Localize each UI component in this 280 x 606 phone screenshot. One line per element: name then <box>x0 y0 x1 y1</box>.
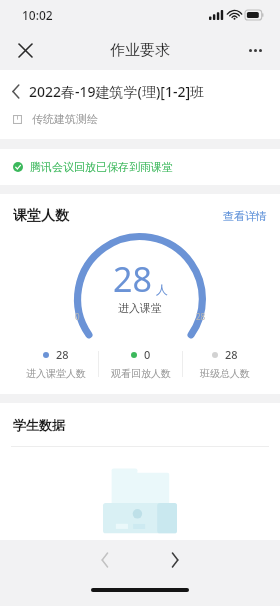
button[interactable]: More options <box>238 33 272 67</box>
staticText: 0 <box>144 347 151 362</box>
staticText: 28 <box>56 347 69 362</box>
button[interactable]: 2022春-19建筑学(理)[1-2]班 <box>0 82 280 101</box>
staticText: 作业要求 <box>110 41 170 60</box>
staticText: 查看详情 <box>223 209 267 223</box>
staticText: 2022春-19建筑学(理)[1-2]班 <box>29 82 205 101</box>
button[interactable]: 28 <box>183 347 266 380</box>
staticText: 28 <box>113 256 152 302</box>
staticText: 传统建筑测绘 <box>32 112 98 126</box>
staticText: 0 <box>75 311 80 322</box>
staticText: 进入课堂人数 <box>26 367 86 380</box>
staticText: 腾讯会议回放已保存到雨课堂 <box>30 160 173 174</box>
button[interactable]: 28 <box>14 347 98 380</box>
staticText: 班级总人数 <box>200 367 250 380</box>
button[interactable]: 查看详情 <box>223 209 267 223</box>
staticText: 10:02 <box>22 7 53 23</box>
staticText: 进入课堂 <box>118 301 162 315</box>
button[interactable]: Back <box>88 543 122 577</box>
button[interactable]: 0 <box>99 347 182 380</box>
staticText: 28 <box>225 347 238 362</box>
staticText: 课堂人数 <box>13 207 69 225</box>
staticText: 28 <box>196 311 206 322</box>
staticText: 人 <box>156 282 168 297</box>
button[interactable]: Close <box>8 33 42 67</box>
staticText: 学生数据 <box>13 417 65 433</box>
button[interactable]: Forward <box>158 543 192 577</box>
staticText: 观看回放人数 <box>111 367 171 380</box>
